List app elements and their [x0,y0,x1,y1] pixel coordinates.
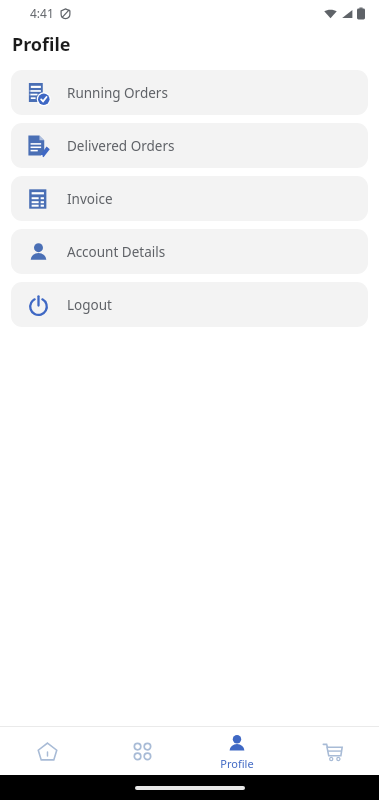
staticText: Delivered Orders [67,137,175,155]
staticText: Profile [220,756,254,771]
staticText: 4:41 [30,5,54,21]
button[interactable]: Cart [284,726,379,775]
button[interactable]: Account Details [11,229,368,274]
button[interactable]: Profile [189,726,284,775]
staticText: Logout [67,296,112,314]
button[interactable]: Categories [94,726,189,775]
staticText: Running Orders [67,84,168,102]
button[interactable]: Home [0,726,94,775]
button[interactable]: Running Orders [11,70,368,115]
staticText: Account Details [67,243,166,261]
button[interactable]: Logout [11,282,368,327]
staticText: Profile [12,32,71,57]
button[interactable]: Delivered Orders [11,123,368,168]
button[interactable]: Invoice [11,176,368,221]
staticText: Invoice [67,190,113,208]
